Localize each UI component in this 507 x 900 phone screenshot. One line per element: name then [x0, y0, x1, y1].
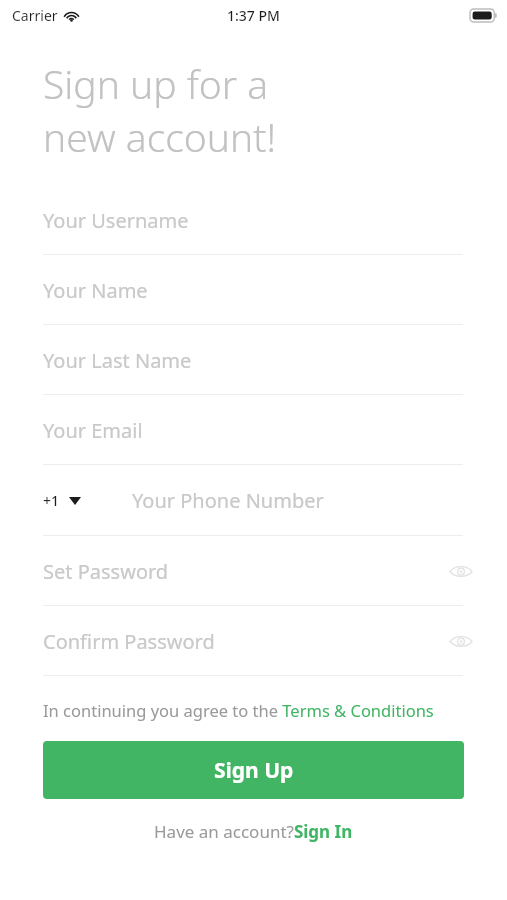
- staticText: Carrier: [12, 6, 58, 25]
- button[interactable]: +1: [43, 491, 81, 510]
- button[interactable]: Show password: [448, 628, 474, 654]
- staticText: Your Email: [43, 417, 143, 444]
- staticText: Set Password: [43, 558, 169, 585]
- staticText: Your Username: [43, 207, 189, 234]
- button[interactable]: Your Name: [0, 255, 507, 325]
- staticText: Sign up for a: [43, 57, 269, 110]
- staticText: Your Last Name: [43, 347, 192, 374]
- button[interactable]: Your Username: [0, 185, 507, 255]
- staticText: Confirm Password: [43, 628, 215, 655]
- staticText: Have an account?Sign In: [154, 820, 353, 843]
- button[interactable]: Show password: [448, 558, 474, 584]
- staticText: 1:37 PM: [227, 6, 280, 25]
- button[interactable]: Sign Up: [43, 741, 464, 799]
- button[interactable]: Your Phone Number: [132, 487, 324, 514]
- staticText: +1: [43, 491, 60, 510]
- button[interactable]: Your Last Name: [0, 325, 507, 395]
- staticText: Your Name: [43, 277, 148, 304]
- staticText: new account!: [43, 110, 277, 163]
- button[interactable]: Confirm Password: [0, 606, 507, 676]
- button[interactable]: Your Email: [0, 395, 507, 465]
- staticText: In continuing you agree to the Terms & C…: [43, 699, 434, 721]
- staticText: Sign Up: [214, 756, 294, 785]
- button[interactable]: Have an account?Sign In: [0, 820, 507, 843]
- button[interactable]: In continuing you agree to the Terms & C…: [43, 699, 434, 721]
- other: Select country code: [69, 497, 81, 505]
- button[interactable]: Set Password: [0, 536, 507, 606]
